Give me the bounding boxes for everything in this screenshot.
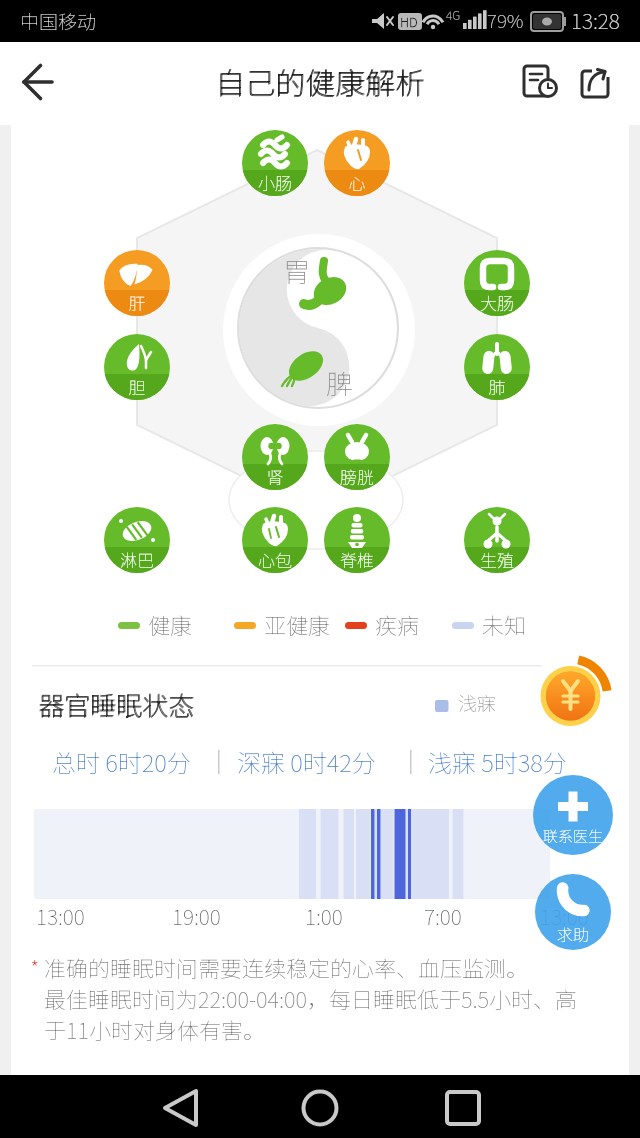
button[interactable] xyxy=(324,130,390,196)
staticText: 健康 xyxy=(148,608,193,640)
staticText: 准确的睡眠时间需要连续稳定的心率、血压监测。 xyxy=(44,951,529,983)
staticText: 中国移动 xyxy=(20,7,97,35)
staticText: 19:00 xyxy=(172,901,221,931)
staticText: 淋巴 xyxy=(104,547,170,572)
button[interactable] xyxy=(464,334,530,400)
staticText: 自己的健康解析 xyxy=(0,60,640,103)
staticText: 浅寐 xyxy=(458,689,497,717)
staticText: 小肠 xyxy=(242,170,308,195)
button[interactable] xyxy=(242,507,308,573)
staticText: 器官睡眠状态 xyxy=(38,685,195,723)
staticText: 器官睡眠状态 xyxy=(38,686,195,724)
button[interactable] xyxy=(515,58,561,104)
staticText: 胃 xyxy=(283,251,310,290)
button[interactable] xyxy=(242,130,308,196)
button[interactable] xyxy=(574,58,618,102)
button[interactable] xyxy=(464,507,530,573)
staticText: 4G xyxy=(446,6,461,23)
button[interactable]: 求助 xyxy=(535,874,611,950)
staticText: 自己的健康解析 xyxy=(0,59,640,102)
staticText: 深寐 0时42分 xyxy=(237,744,376,779)
staticText: 浅寐 5时38分 xyxy=(428,744,567,779)
staticText: 心 xyxy=(324,170,390,195)
staticText: 总时 6时20分 xyxy=(52,744,191,779)
staticText: 生殖 xyxy=(464,547,530,572)
staticText: 亚健康 xyxy=(264,608,331,640)
staticText: 1:00 xyxy=(305,901,343,931)
staticText: 联系医生 xyxy=(533,825,613,847)
staticText: 未知 xyxy=(482,608,527,640)
staticText: 大肠 xyxy=(464,290,530,315)
staticText: 于11小时对身体有害。 xyxy=(44,1013,265,1045)
button[interactable] xyxy=(104,250,170,316)
button[interactable] xyxy=(10,52,66,108)
button[interactable] xyxy=(148,1078,208,1138)
staticText: 最佳睡眠时间为22:00-04:00，每日睡眠低于5.5小时、高 xyxy=(44,982,577,1014)
staticText: 13:00 xyxy=(540,901,589,931)
button[interactable] xyxy=(324,424,390,490)
staticText: 肺 xyxy=(464,374,530,399)
staticText: 肾 xyxy=(242,464,308,489)
staticText: 胆 xyxy=(104,374,170,399)
staticText: 器官睡眠状态 xyxy=(39,685,196,723)
staticText: 13:00 xyxy=(36,901,85,931)
button[interactable]: 联系医生 xyxy=(533,775,613,855)
button[interactable] xyxy=(464,250,530,316)
staticText: 脊椎 xyxy=(324,547,390,572)
staticText: 求助 xyxy=(535,922,611,945)
staticText: 7:00 xyxy=(424,901,462,931)
button[interactable] xyxy=(242,424,308,490)
staticText: 膀胱 xyxy=(324,464,390,489)
staticText: 肝 xyxy=(104,290,170,315)
button[interactable] xyxy=(533,656,611,734)
staticText: 疾病 xyxy=(375,608,420,640)
button[interactable] xyxy=(104,507,170,573)
button[interactable] xyxy=(324,507,390,573)
staticText: 脾 xyxy=(326,363,353,402)
staticText: 自己的健康解析 xyxy=(1,59,640,102)
staticText: * xyxy=(30,951,40,983)
button[interactable] xyxy=(104,334,170,400)
staticText: 79% xyxy=(487,6,524,34)
staticText: 心包 xyxy=(242,547,308,572)
button[interactable] xyxy=(290,1078,350,1138)
button[interactable] xyxy=(432,1078,492,1138)
staticText: HD xyxy=(400,12,418,31)
staticText: 13:28 xyxy=(571,5,620,35)
